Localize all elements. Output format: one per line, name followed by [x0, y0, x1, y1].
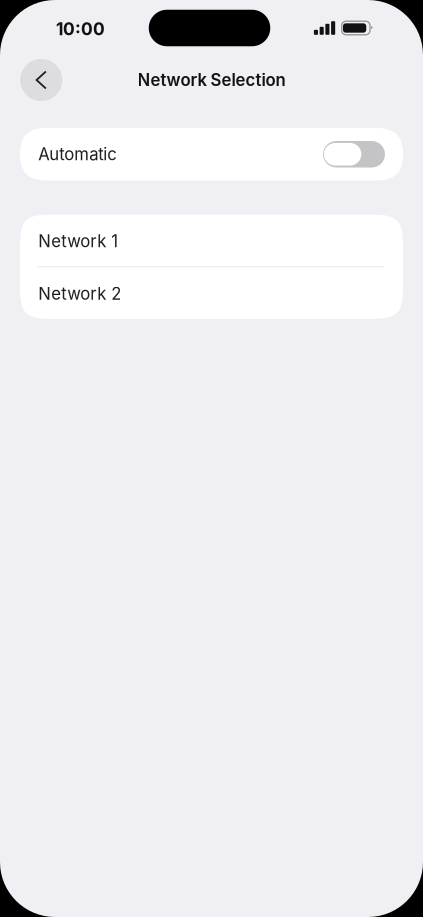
staticText: Network Selection: [137, 70, 285, 90]
staticText: Network 2: [38, 284, 121, 304]
button[interactable]: Back: [19, 58, 63, 102]
staticText: Network 1: [38, 231, 118, 251]
button[interactable]: Automatic: [20, 128, 403, 180]
staticText: 10:00: [56, 18, 105, 39]
button[interactable]: Network 1: [20, 214, 403, 266]
staticText: Automatic: [38, 144, 117, 164]
button[interactable]: Network 2: [20, 267, 403, 319]
